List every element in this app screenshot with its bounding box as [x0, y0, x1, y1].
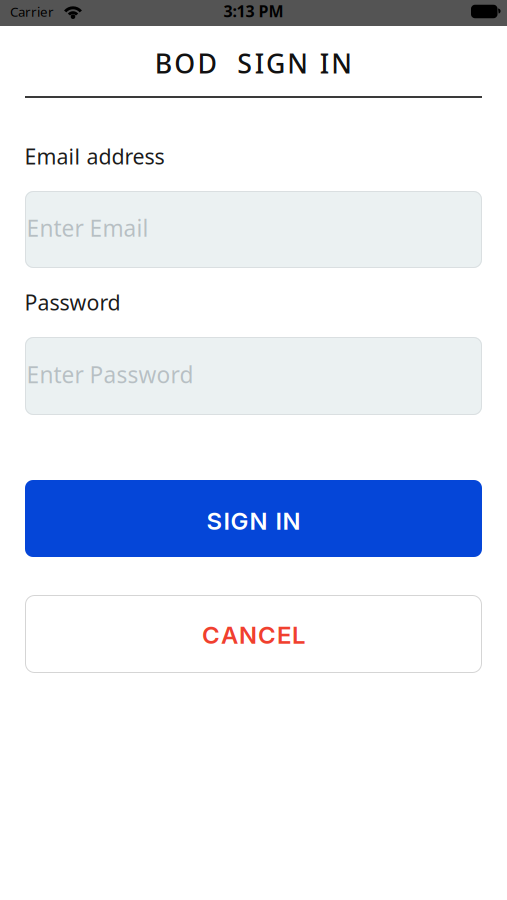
staticText: C	[258, 620, 276, 649]
staticText: D	[197, 45, 216, 81]
staticText: B	[155, 45, 172, 81]
staticText: N	[282, 506, 300, 535]
staticText: N	[331, 45, 352, 81]
staticText: I	[320, 45, 329, 81]
button[interactable]: S	[25, 480, 482, 557]
staticText: L	[292, 620, 305, 649]
staticText: Carrier	[10, 2, 54, 21]
staticText: Email address	[24, 142, 164, 170]
button[interactable]: Enter Email	[25, 191, 482, 268]
staticText: A	[221, 620, 238, 649]
staticText: I	[255, 45, 264, 81]
staticText: N	[239, 620, 257, 649]
staticText: G	[266, 45, 285, 81]
staticText: I	[275, 506, 281, 535]
button[interactable]: Enter Password	[25, 337, 482, 415]
staticText: Enter Password	[26, 359, 193, 389]
staticText: N	[249, 506, 267, 535]
staticText: S	[206, 506, 222, 535]
button[interactable]: C	[25, 595, 482, 673]
staticText: E	[277, 620, 291, 649]
staticText: I	[223, 506, 229, 535]
staticText: C	[202, 620, 220, 649]
staticText: Enter Email	[26, 213, 148, 243]
staticText: Password	[24, 288, 120, 316]
staticText: O	[174, 45, 195, 81]
staticText: 3:13 PM	[223, 0, 283, 22]
staticText: S	[237, 45, 252, 81]
staticText: N	[287, 45, 308, 81]
staticText: G	[230, 506, 248, 535]
